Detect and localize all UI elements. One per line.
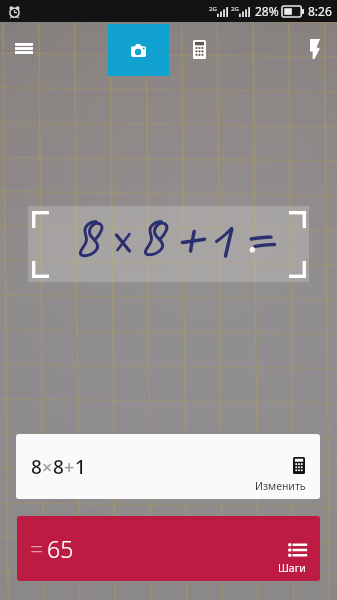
staticText: Изменить — [255, 479, 306, 493]
staticText: 8 — [53, 454, 64, 480]
button[interactable]: Flash — [292, 22, 337, 75]
staticText: 1 — [75, 454, 86, 480]
staticText: Шаги — [278, 561, 306, 575]
staticText: 28% — [255, 3, 279, 19]
button[interactable]: Calculator — [175, 22, 221, 75]
staticText: × — [42, 455, 53, 480]
staticText: 8 — [31, 454, 42, 480]
button[interactable]: = — [17, 516, 320, 581]
staticText: 2G — [231, 5, 239, 13]
staticText: + — [64, 455, 75, 480]
button[interactable]: Menu — [0, 22, 48, 75]
staticText: 65 — [47, 533, 74, 564]
staticText: = — [30, 533, 44, 564]
button[interactable]: 8 — [16, 434, 320, 499]
staticText: 8:26 — [308, 3, 332, 19]
staticText: 2G — [209, 5, 217, 13]
button[interactable]: Camera — [108, 24, 169, 76]
